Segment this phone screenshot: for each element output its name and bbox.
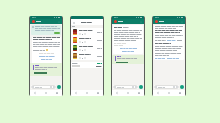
button[interactable]: Send bbox=[57, 85, 61, 89]
button[interactable] bbox=[71, 52, 103, 60]
button[interactable]: Home bbox=[163, 90, 174, 96]
button[interactable]: Recents bbox=[133, 90, 144, 96]
button[interactable]: More options bbox=[180, 20, 183, 23]
button[interactable] bbox=[30, 65, 62, 70]
button[interactable]: Back bbox=[72, 21, 75, 24]
button[interactable]: Back bbox=[112, 90, 122, 96]
button[interactable] bbox=[54, 32, 60, 34]
button[interactable]: Back bbox=[71, 19, 103, 25]
button[interactable] bbox=[154, 85, 179, 89]
button[interactable] bbox=[112, 56, 144, 61]
button[interactable]: More options bbox=[57, 20, 60, 23]
button[interactable]: Home bbox=[122, 90, 133, 96]
button[interactable]: Back bbox=[30, 90, 40, 96]
button[interactable] bbox=[71, 36, 103, 44]
button[interactable] bbox=[113, 25, 143, 54]
button[interactable]: More options bbox=[30, 19, 62, 24]
button[interactable]: Send bbox=[139, 85, 143, 89]
button[interactable] bbox=[154, 25, 184, 60]
button[interactable]: Home bbox=[40, 90, 51, 96]
button[interactable]: Send bbox=[180, 85, 184, 89]
button[interactable]: Recents bbox=[174, 90, 185, 96]
button[interactable] bbox=[71, 44, 103, 52]
button[interactable] bbox=[31, 25, 61, 35]
button[interactable]: Recents bbox=[92, 90, 103, 96]
button[interactable]: More options bbox=[112, 19, 144, 24]
button[interactable] bbox=[71, 28, 103, 36]
button[interactable]: Back bbox=[153, 90, 163, 96]
button[interactable] bbox=[113, 85, 138, 89]
button[interactable]: More options bbox=[139, 20, 142, 23]
button[interactable]: Home bbox=[81, 90, 92, 96]
button[interactable]: Recents bbox=[51, 90, 62, 96]
button[interactable]: Back bbox=[71, 90, 81, 96]
button[interactable] bbox=[31, 85, 56, 89]
button[interactable]: More options bbox=[153, 19, 185, 24]
